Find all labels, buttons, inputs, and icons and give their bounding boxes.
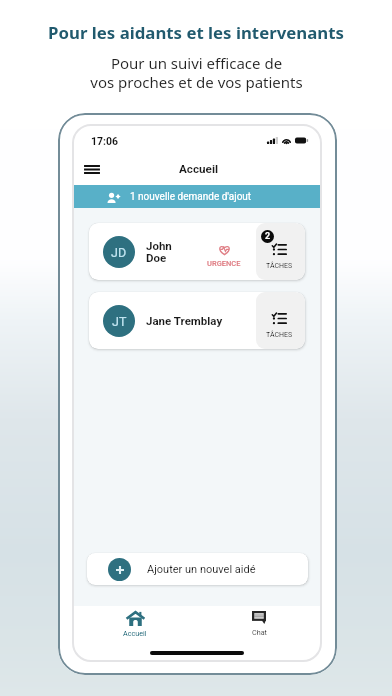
staticText: URGENCE [207, 259, 241, 268]
button[interactable]: Chat [197, 606, 321, 642]
staticText: Chat [252, 628, 267, 636]
staticText: JD [111, 245, 127, 260]
staticText: Pour un suivi efficace de vos proches et… [90, 53, 303, 92]
staticText: Jane Tremblay [146, 314, 223, 327]
button[interactable]: URGENCE [205, 245, 243, 268]
button[interactable]: Menu [79, 156, 105, 182]
staticText: 17:06 [91, 135, 119, 147]
staticText: John Doe [146, 239, 172, 265]
staticText: TÂCHES [266, 262, 293, 270]
button[interactable]: JT [89, 292, 305, 349]
staticText: Accueil [123, 629, 147, 637]
button[interactable]: TÂCHES [256, 223, 305, 280]
staticText: JT [112, 314, 127, 329]
button[interactable]: TÂCHES [256, 292, 305, 349]
staticText: 1 nouvelle demande d'ajout [130, 191, 252, 203]
staticText: 2 [265, 231, 271, 242]
button[interactable]: Accueil [73, 606, 197, 642]
button[interactable]: JD [89, 223, 305, 280]
staticText: Pour les aidants et les intervenants [48, 21, 344, 44]
button[interactable]: 1 nouvelle demande d'ajout [73, 185, 321, 208]
staticText: Accueil [179, 162, 219, 176]
staticText: TÂCHES [266, 331, 293, 339]
staticText: Ajouter un nouvel aidé [147, 563, 256, 576]
button[interactable]: Ajouter un nouvel aidé [87, 553, 308, 585]
